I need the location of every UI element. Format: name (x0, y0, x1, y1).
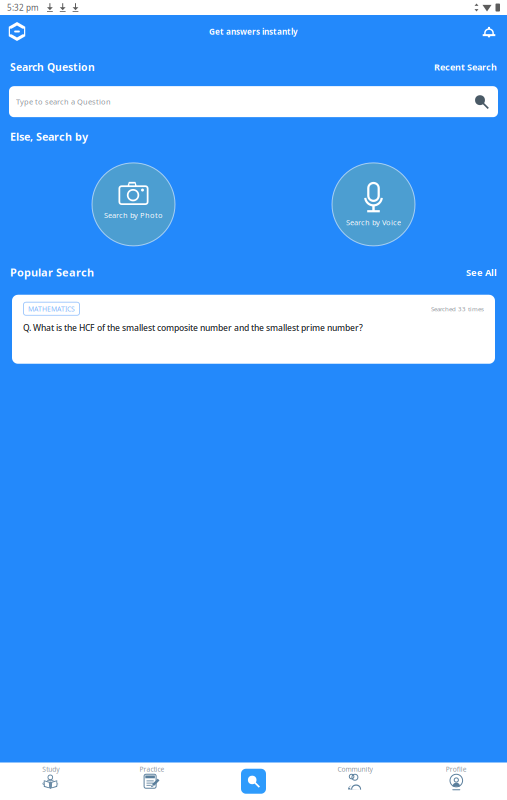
button[interactable]: Community (304, 763, 406, 800)
button[interactable]: See All (466, 266, 497, 279)
staticText: Search Question (10, 60, 95, 74)
staticText: Type to search a Question (16, 97, 111, 107)
button[interactable]: Home (0, 15, 34, 48)
staticText: See All (466, 266, 497, 279)
staticText: Else, Search by (10, 129, 88, 144)
staticText: Recent Search (434, 61, 497, 73)
staticText: Searched 33 times (431, 305, 484, 313)
staticText: Practice (140, 765, 165, 774)
button[interactable]: Notifications (471, 15, 507, 48)
button[interactable]: Practice (101, 763, 203, 800)
button[interactable]: Search by Voice (332, 163, 415, 246)
staticText: Study (42, 765, 59, 774)
staticText: Search by Voice (346, 217, 401, 227)
staticText: Popular Search (10, 265, 94, 280)
button[interactable]: Profile (406, 763, 507, 800)
staticText: Profile (446, 765, 467, 774)
button[interactable]: Search by Photo (92, 163, 175, 246)
staticText: MATHEMATICS (28, 304, 75, 313)
staticText: Get answers instantly (209, 26, 298, 37)
button[interactable]: MATHEMATICS (12, 295, 495, 364)
staticText: Q. What is the HCF of the smallest compo… (23, 322, 363, 333)
button[interactable]: Search (203, 762, 304, 800)
staticText: Search by Photo (104, 210, 163, 220)
staticText: 5:32 pm (7, 2, 39, 13)
button[interactable]: Type to search a Question (9, 86, 498, 117)
button[interactable]: Recent Search (434, 61, 497, 73)
button[interactable]: Study (0, 763, 101, 800)
staticText: Community (337, 765, 372, 774)
